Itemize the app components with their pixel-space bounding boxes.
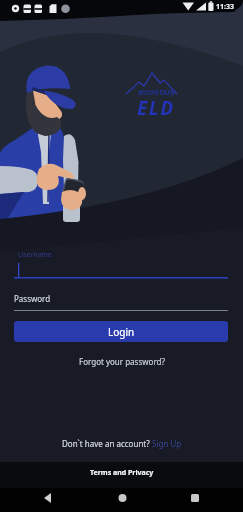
button[interactable]: Sign Up [152,438,182,449]
button[interactable]: Forgot your password? [79,356,165,367]
staticText: ELD [137,95,175,121]
button[interactable]: Password [14,286,228,312]
button[interactable]: Username [14,248,228,279]
staticText: Username [18,250,53,260]
button[interactable]: Login [14,321,228,342]
staticText: MOUNTAIN [138,88,175,97]
staticText: Password [14,293,51,304]
staticText: Login [108,325,135,339]
button[interactable] [170,488,218,512]
button[interactable]: Terms and Privacy [90,468,154,478]
staticText: Don`t have an account? [62,438,152,449]
button[interactable] [24,488,72,512]
button[interactable] [98,488,146,512]
staticText: 11:33 [216,2,234,12]
